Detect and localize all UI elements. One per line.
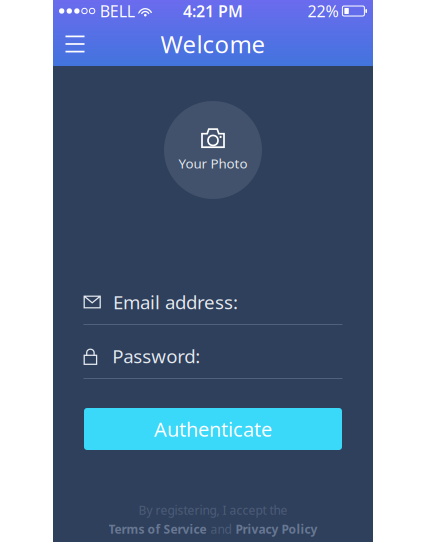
button[interactable]: Menu <box>53 22 97 66</box>
button[interactable]: Privacy Policy <box>235 521 317 537</box>
staticText: Password: <box>112 344 200 368</box>
staticText: Your Photo <box>178 154 247 172</box>
staticText: 22% <box>307 0 338 22</box>
staticText: BELL <box>100 0 135 22</box>
staticText: Privacy Policy <box>235 521 317 537</box>
staticText: Authenticate <box>154 416 272 442</box>
staticText: 4:21 PM <box>183 0 243 22</box>
staticText: By registering, I accept the <box>138 502 287 518</box>
staticText: Welcome <box>160 28 265 60</box>
button[interactable]: Terms of Service <box>108 521 206 537</box>
button[interactable]: Authenticate <box>84 408 342 450</box>
staticText: Terms of Service <box>108 521 206 537</box>
staticText: and <box>210 521 231 537</box>
button[interactable]: Your Photo <box>164 101 262 199</box>
staticText: Email address: <box>113 290 238 314</box>
